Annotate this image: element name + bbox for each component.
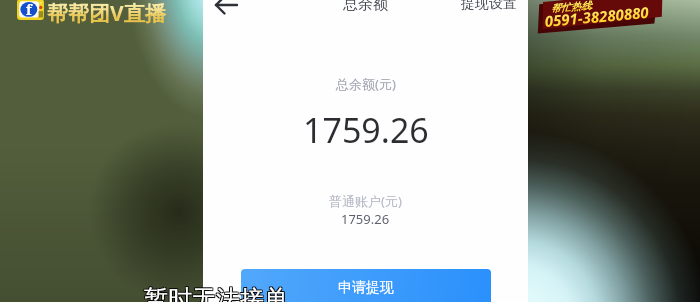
staticText: 暂时无法接单	[145, 285, 289, 302]
button[interactable]: 提现设置	[461, 0, 517, 13]
staticText: 暂时无法接单	[143, 283, 287, 302]
button[interactable]: Back	[211, 0, 241, 19]
staticText: 帮忙热线:	[550, 0, 594, 15]
staticText: 1759.26	[303, 107, 429, 153]
staticText: 暂时无法接单	[144, 283, 288, 302]
staticText: 1759.26	[341, 210, 390, 228]
staticText: 帮帮团V直播	[47, 0, 166, 28]
staticText: 暂时无法接单	[143, 284, 287, 302]
staticText: 普通账户(元)	[329, 192, 402, 210]
staticText: 申请提现	[338, 279, 394, 297]
staticText: 暂时无法接单	[144, 284, 288, 302]
button[interactable]: 申请提现	[241, 269, 491, 302]
staticText: 暂时无法接单	[144, 285, 288, 302]
staticText: 总余额	[343, 0, 388, 14]
staticText: 暂时无法接单	[145, 283, 289, 302]
staticText: 提现设置	[461, 0, 517, 13]
staticText: f	[26, 0, 32, 19]
staticText: 0591-38280880	[544, 2, 650, 31]
staticText: 暂时无法接单	[145, 284, 289, 302]
staticText: 暂时无法接单	[143, 285, 287, 302]
staticText: 总余额(元)	[336, 75, 396, 93]
